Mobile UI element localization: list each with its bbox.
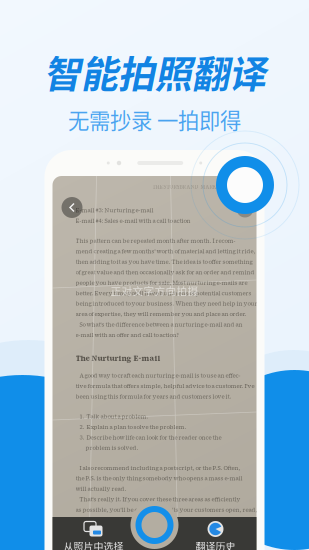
staticText: 正对文字方向拍摄 [110, 283, 198, 298]
staticText: This pattern can be repeated month after… [75, 237, 235, 245]
staticText: and remember. [75, 516, 119, 524]
staticText: 2. Explain a plan to solve the problem. [75, 423, 186, 431]
staticText: 从照片中选择 [63, 539, 123, 550]
staticText: tive formula that offers simple, helpful… [75, 382, 254, 390]
button[interactable]: 翻译历史 [178, 521, 252, 550]
staticText: That's really it. If you cover these thr… [75, 495, 240, 503]
staticText: then adding to it as you have time. The … [75, 258, 252, 266]
staticText: the P.S. is the only thing somebody who … [75, 474, 242, 482]
staticText: will actually read. [75, 485, 126, 493]
staticText: better. Every time you'll have hundreds … [75, 289, 251, 297]
staticText: The Nurturing E-mail [75, 353, 160, 363]
staticText: people you have products for sale. Most … [75, 279, 247, 287]
staticText: E-mail #4: Sales e-mail with a call to a… [75, 217, 190, 225]
staticText: of great value and then occasionally ask… [75, 268, 254, 276]
button[interactable]: Back [61, 197, 82, 218]
staticText: I also recommend including a postscript,… [75, 464, 240, 472]
staticText: 智能拍照翻译 [43, 45, 265, 99]
staticText: A good way to craft each nurturing e-mai… [75, 371, 240, 379]
staticText: 3. Describe how life can look for the re… [75, 433, 221, 441]
staticText: 无需抄录 一拍即得 [68, 104, 241, 135]
staticText: area of expertise, they will remember yo… [75, 310, 246, 318]
staticText: problem is solved. [75, 444, 138, 452]
staticText: mend creating a few months' worth of mat… [75, 247, 255, 255]
staticText: THE STORYBRAND MARKETING ROADMAP [152, 184, 259, 190]
button[interactable]: Capture [130, 501, 178, 549]
staticText: being introduced to your business. When … [75, 300, 257, 308]
staticText: E-mail #3: Nurturing e-mail [75, 206, 153, 214]
button[interactable]: 从照片中选择 [56, 521, 130, 550]
staticText: 翻译历史 [195, 539, 235, 550]
staticText: So what's the difference between a nurtu… [75, 321, 242, 328]
staticText: e-mail with an offer and call to action? [75, 331, 178, 339]
staticText: been using this formula for years and cu… [75, 392, 231, 400]
staticText: as possible, you'll be crafting e-mails … [75, 506, 257, 514]
staticText: 1. Talk about a problem. [75, 412, 148, 420]
